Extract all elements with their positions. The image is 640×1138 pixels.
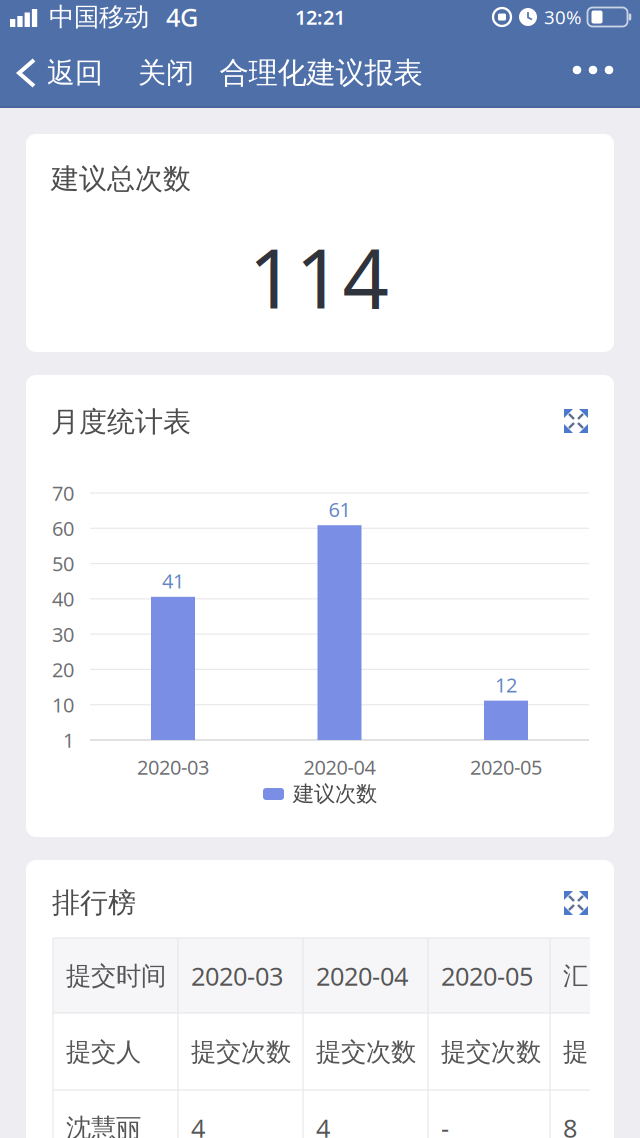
staticText: 2020-03 bbox=[137, 754, 209, 780]
staticText: 建议总次数 bbox=[51, 162, 191, 196]
staticText: 114 bbox=[248, 223, 389, 331]
button[interactable]: Expand table bbox=[564, 891, 588, 915]
staticText: - bbox=[441, 1111, 449, 1138]
staticText: 提 bbox=[563, 1036, 588, 1067]
staticText: 10 bbox=[52, 691, 74, 718]
button[interactable]: 返回 bbox=[15, 56, 103, 90]
staticText: 2020-04 bbox=[303, 754, 375, 780]
staticText: 提交人 bbox=[66, 1036, 141, 1067]
staticText: 61 bbox=[328, 496, 350, 522]
staticText: 12:21 bbox=[295, 4, 345, 30]
staticText: 2020-05 bbox=[470, 754, 542, 780]
staticText: 60 bbox=[52, 515, 74, 542]
staticText: 提交次数 bbox=[316, 1036, 416, 1067]
staticText: 50 bbox=[52, 550, 74, 577]
staticText: 4 bbox=[191, 1111, 205, 1138]
staticText: 4G bbox=[166, 0, 198, 34]
staticText: 1 bbox=[63, 727, 74, 753]
staticText: 2020-05 bbox=[441, 959, 533, 993]
staticText: 沈慧丽 bbox=[66, 1112, 141, 1138]
staticText: 4 bbox=[316, 1111, 330, 1138]
staticText: 30 bbox=[52, 621, 74, 647]
staticText: 41 bbox=[162, 567, 184, 594]
staticText: 排行榜 bbox=[52, 886, 136, 920]
staticText: 返回 bbox=[47, 56, 103, 90]
staticText: 合理化建议报表 bbox=[219, 55, 422, 91]
staticText: 40 bbox=[52, 586, 74, 612]
staticText: 提交时间 bbox=[66, 960, 166, 991]
staticText: 汇 bbox=[563, 960, 588, 991]
staticText: 月度统计表 bbox=[51, 405, 191, 439]
button[interactable]: More bbox=[561, 48, 625, 92]
staticText: 70 bbox=[52, 480, 74, 506]
button[interactable]: Expand chart bbox=[564, 409, 588, 433]
button[interactable]: 关闭 bbox=[138, 56, 194, 90]
staticText: 关闭 bbox=[138, 56, 194, 90]
staticText: 建议次数 bbox=[293, 781, 377, 807]
staticText: 提交次数 bbox=[191, 1036, 291, 1067]
staticText: 20 bbox=[52, 656, 74, 683]
staticText: 30% bbox=[544, 5, 582, 29]
staticText: 中国移动 bbox=[49, 1, 149, 32]
staticText: 提交次数 bbox=[441, 1036, 541, 1067]
staticText: 8 bbox=[563, 1111, 577, 1138]
staticText: 12 bbox=[495, 671, 517, 698]
staticText: 2020-04 bbox=[316, 959, 408, 993]
staticText: 2020-03 bbox=[191, 959, 283, 993]
